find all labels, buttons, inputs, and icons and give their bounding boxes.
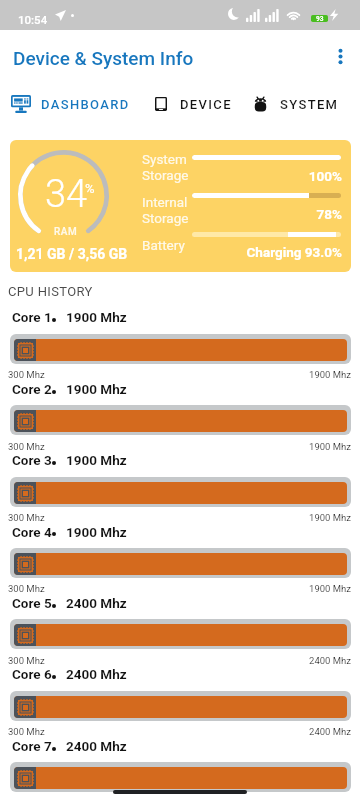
button[interactable]: DEVICE [144,82,243,126]
staticText: DASHBOARD [41,97,130,112]
staticText: Battery [142,237,185,253]
staticText: 34 [45,172,88,217]
staticText: Core 6 [12,666,52,682]
staticText: 2400 Mhz [280,655,351,666]
staticText: DEVICE [180,97,232,112]
staticText: Charging 93.0% [180,244,342,260]
staticText: Core 3 [12,452,52,468]
button[interactable]: Core 5 frequency [10,619,351,649]
staticText: CPU HISTORY [8,284,93,299]
staticText: 93 [316,15,324,22]
button[interactable]: Core 4 frequency [10,548,351,578]
staticText: 300 Mhz [8,726,45,737]
staticText: Device & System Info [13,47,194,69]
button[interactable]: Core 7 frequency [10,762,351,792]
staticText: Core 2 [12,381,52,397]
button[interactable]: Core 2 frequency [10,405,351,435]
staticText: 300 Mhz [8,369,45,380]
staticText: 1900 Mhz [280,583,351,594]
staticText: % [85,181,95,196]
staticText: Core 1 [12,309,52,325]
staticText: 1900 Mhz [66,524,127,540]
staticText: 2400 Mhz [66,666,127,682]
button[interactable]: DASHBOARD [0,82,141,126]
staticText: 10:54 [18,13,48,26]
staticText: Core 5 [12,595,52,611]
staticText: 1900 Mhz [280,512,351,523]
staticText: 300 Mhz [8,441,45,452]
staticText: System Storage [142,151,189,183]
staticText: 300 Mhz [8,512,45,523]
staticText: Internal Storage [142,194,189,226]
staticText: 300 Mhz [8,583,45,594]
button[interactable]: Core 1 frequency [10,334,351,364]
staticText: 2400 Mhz [66,738,127,754]
staticText: 2400 Mhz [280,726,351,737]
staticText: Core 4 [12,524,52,540]
staticText: 78% [180,206,342,222]
staticText: 1900 Mhz [66,452,127,468]
staticText: 300 Mhz [8,655,45,666]
staticText: RAM [54,226,78,238]
staticText: 2400 Mhz [66,595,127,611]
button[interactable]: Core 6 frequency [10,691,351,721]
button[interactable]: SYSTEM [243,82,350,126]
button[interactable]: More options [318,34,360,78]
button[interactable]: Core 3 frequency [10,477,351,507]
staticText: 1900 Mhz [66,381,127,397]
staticText: SYSTEM [280,97,339,112]
staticText: 1,21 GB / 3,56 GB [16,246,128,262]
staticText: 1900 Mhz [280,369,351,380]
staticText: 1900 Mhz [66,309,127,325]
staticText: 100% [180,168,342,184]
staticText: Core 7 [12,738,52,754]
button[interactable]: 34 [10,140,351,272]
staticText: 1900 Mhz [280,441,351,452]
